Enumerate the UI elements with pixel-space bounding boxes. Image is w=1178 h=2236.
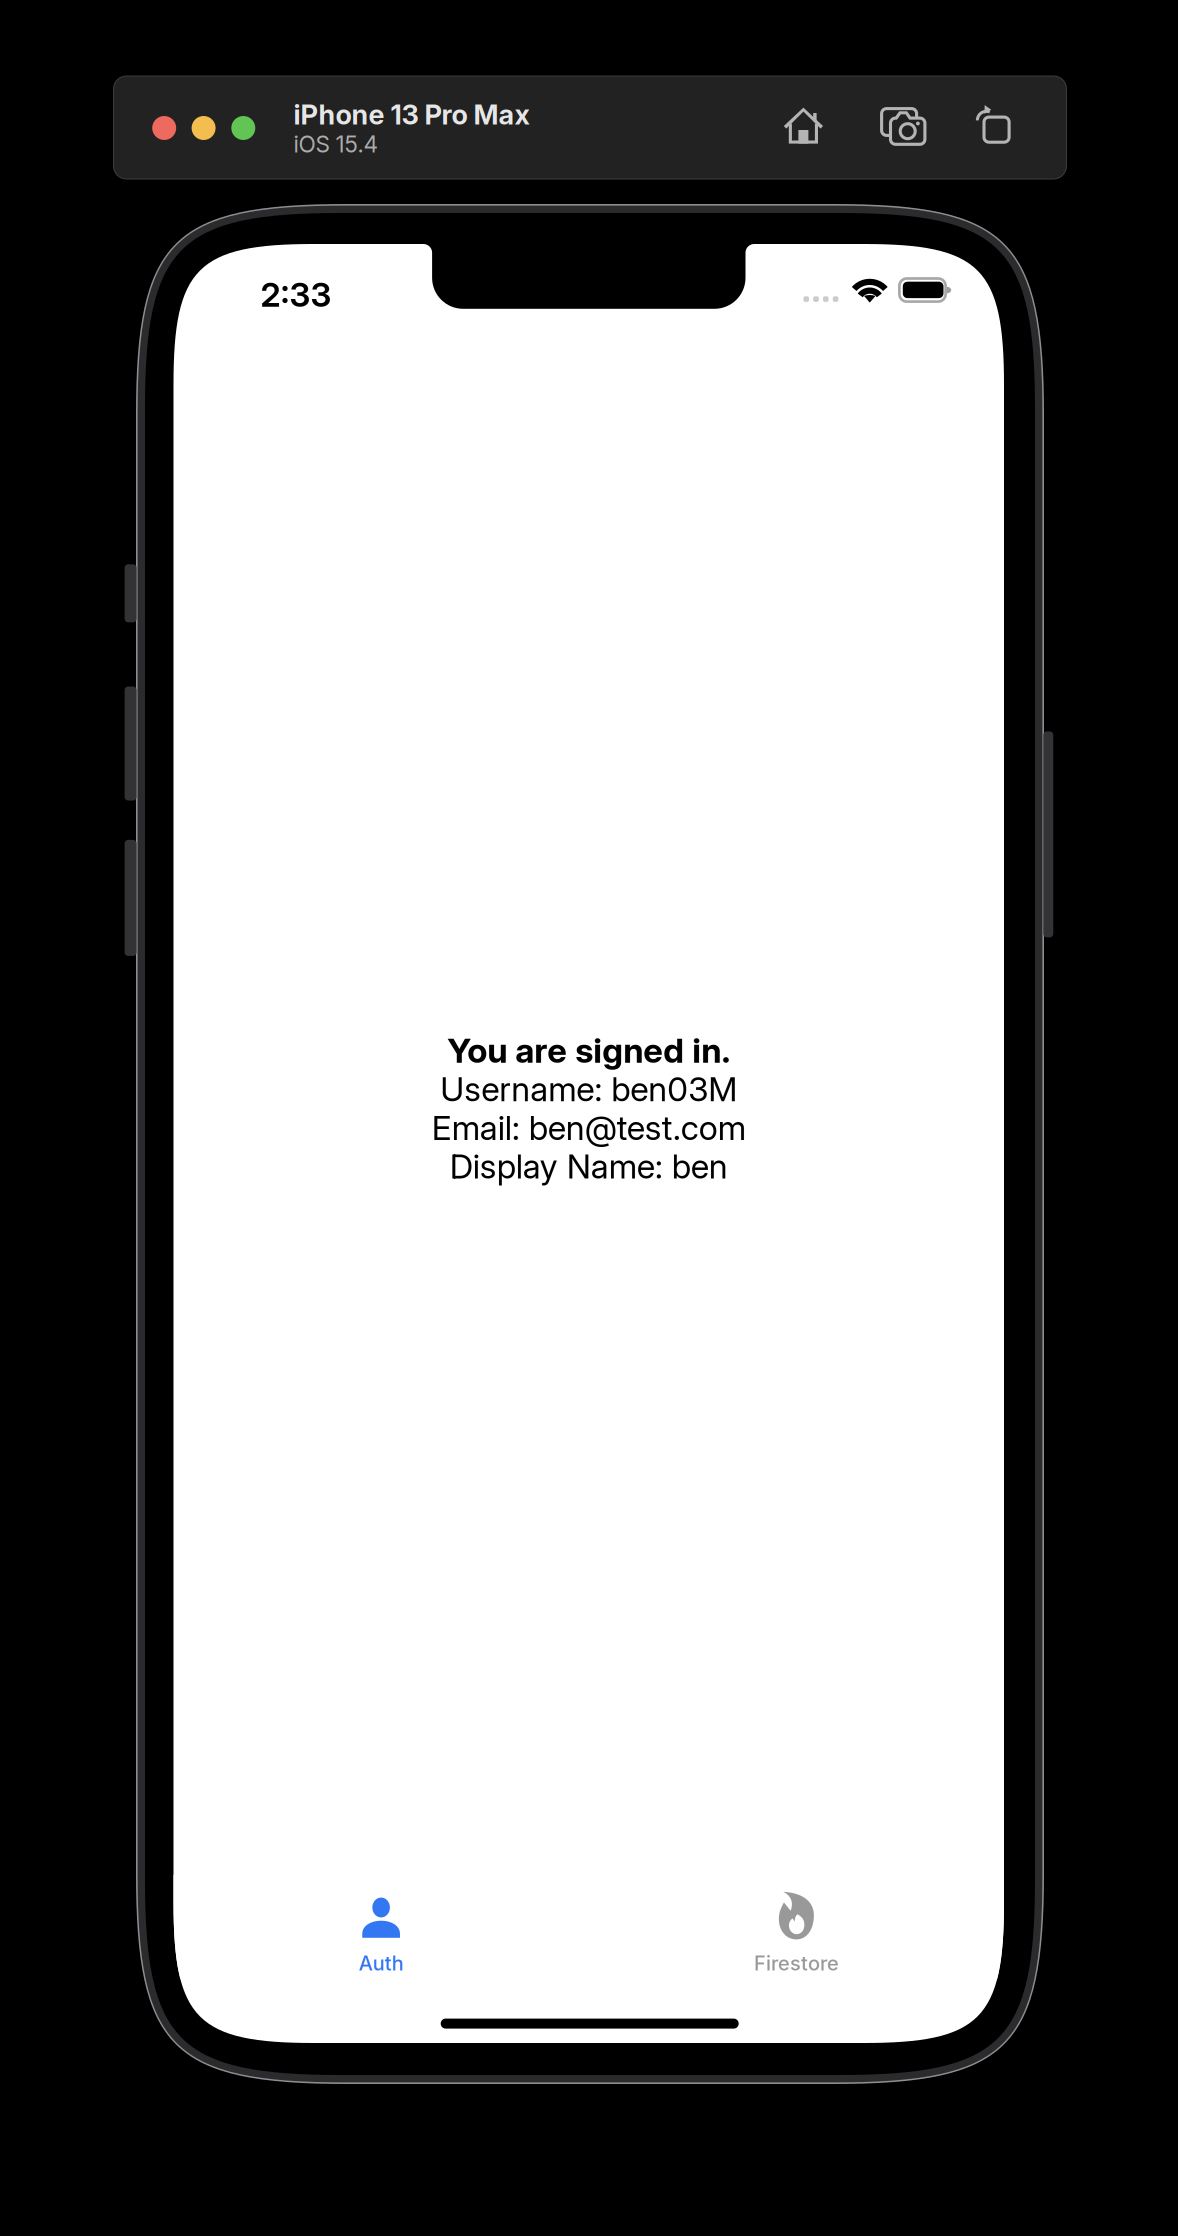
staticText: Firestore [754,1951,839,1975]
staticText: You are signed in. [447,1030,730,1071]
button[interactable]: Home [784,108,823,144]
button[interactable]: Screenshot [882,109,925,144]
button[interactable]: Share [976,105,1009,142]
button[interactable]: Close window [152,116,176,140]
button[interactable]: Auth [173,1875,589,1979]
button[interactable]: Firestore [589,1875,1004,1979]
staticText: Email: ben@test.com [432,1108,746,1148]
staticText: iPhone 13 Pro Max [293,98,529,131]
staticText: iOS 15.4 [293,131,378,158]
staticText: Auth [359,1951,404,1975]
staticText: Username: ben03M [440,1069,737,1109]
staticText: Display Name: ben [450,1146,728,1187]
staticText: 2:33 [260,274,331,300]
button[interactable]: Zoom window [231,116,255,140]
button[interactable]: Minimize window [192,116,216,140]
